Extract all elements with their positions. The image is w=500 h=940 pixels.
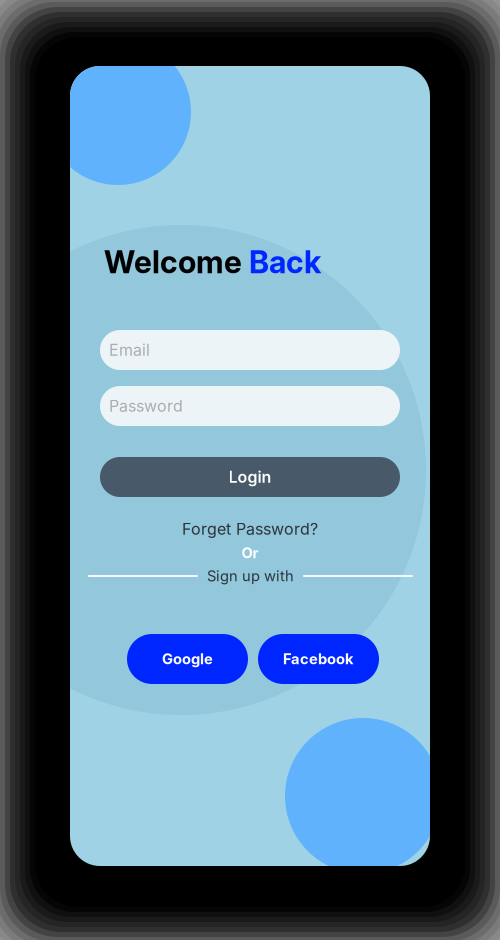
staticText: Back (249, 244, 321, 280)
button[interactable]: Facebook (258, 634, 379, 684)
staticText: Welcome (104, 244, 249, 280)
staticText: Sign up with (207, 567, 294, 585)
staticText: Email (109, 341, 150, 359)
staticText: Forget Password? (182, 520, 318, 538)
button[interactable]: Forget Password? (100, 519, 400, 539)
button[interactable]: Login (100, 457, 400, 497)
staticText: Facebook (283, 650, 354, 668)
button[interactable]: Google (127, 634, 248, 684)
staticText: Google (162, 650, 213, 668)
staticText: Password (109, 397, 183, 415)
staticText: Login (228, 468, 271, 486)
staticText: Or (241, 544, 258, 562)
